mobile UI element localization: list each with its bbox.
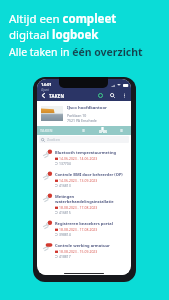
staticText: 7521 PA Enschede <box>67 118 97 123</box>
button[interactable]: Sync <box>97 92 104 99</box>
staticText: TAKEN <box>49 93 65 99</box>
staticText: 137704 <box>59 161 71 166</box>
staticText: 4 juni <box>41 88 49 92</box>
staticText: 416813 <box>59 183 71 188</box>
staticText: 416815 <box>59 210 71 215</box>
button[interactable]: TAKEN <box>37 126 74 135</box>
staticText: Altijd een compleet <box>9 11 117 27</box>
staticText: Alle taken in één overzicht <box>9 45 143 59</box>
button[interactable]: Search <box>109 92 116 99</box>
button[interactable]: Tab <box>74 126 93 135</box>
staticText: Registreren bezoekers portal <box>55 221 113 226</box>
staticText: Metingen <box>55 194 75 199</box>
staticText: 14-06-2023 - 14-06-2023 <box>59 156 98 161</box>
staticText: waterbehandelingsinstallatie <box>55 199 114 204</box>
staticText: 398814 <box>59 232 71 237</box>
button[interactable]: IJsco hoofdkantoor <box>37 101 131 126</box>
staticText: Bluetooth temperatuurmeting <box>55 150 117 155</box>
staticText: Zoeken <box>47 137 61 142</box>
button[interactable]: More options <box>121 92 128 99</box>
button[interactable]: Zoeken <box>39 136 129 143</box>
staticText: TAKEN <box>40 128 53 133</box>
staticText: 18-08-2023 - 15-09-2023 <box>59 249 98 254</box>
button[interactable]: Metingen <box>37 191 131 218</box>
staticText: IJsco hoofdkantoor <box>67 105 107 111</box>
staticText: 418817 <box>59 254 71 259</box>
staticText: Parklaan 10 <box>67 113 87 118</box>
button[interactable]: Controle werking armatuur <box>37 240 131 262</box>
staticText: OPEN <box>99 130 107 134</box>
button[interactable]: Tab <box>112 126 131 135</box>
staticText: 14:01 <box>41 82 52 88</box>
button[interactable]: Back <box>40 92 47 99</box>
button[interactable]: Registreren bezoekers portal <box>37 218 131 240</box>
staticText: Controle werking armatuur <box>55 243 110 248</box>
staticText: 18-08-2023 - 17-08-2023 <box>59 227 98 232</box>
button[interactable]: Bluetooth temperatuurmeting <box>37 147 131 169</box>
button[interactable]: Controle BMI door beheerder (OP) <box>37 169 131 191</box>
staticText: 18-08-2023 - 17-08-2023 <box>59 205 98 210</box>
staticText: 14-06-2023 - 13-09-2023 <box>59 178 98 183</box>
button[interactable]: OPEN <box>93 126 112 135</box>
staticText: digitaal logboek <box>9 27 99 43</box>
staticText: Controle BMI door beheerder (OP) <box>55 172 123 177</box>
